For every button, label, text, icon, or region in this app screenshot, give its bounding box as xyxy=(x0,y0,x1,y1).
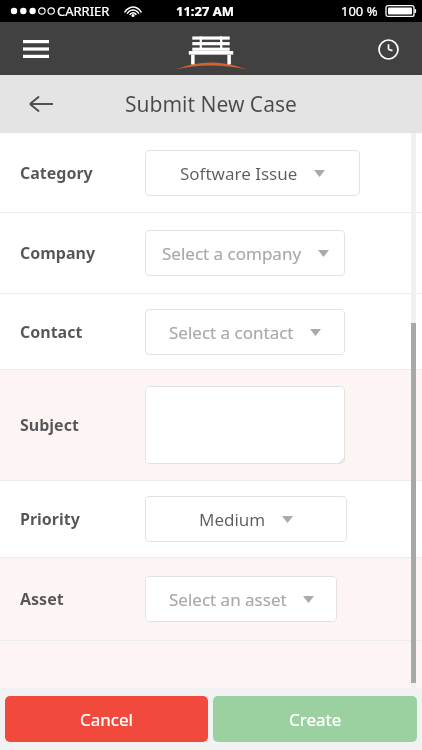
button[interactable]: History xyxy=(368,29,408,69)
staticText: CARRIER xyxy=(57,2,110,20)
button[interactable]: Select a contact xyxy=(145,309,345,355)
staticText: Submit New Case xyxy=(125,90,297,119)
staticText: Select a contact xyxy=(169,321,294,344)
staticText: 100 % xyxy=(341,2,378,20)
staticText: Create xyxy=(289,708,342,731)
staticText: Cancel xyxy=(80,708,133,731)
button[interactable]: Subject xyxy=(0,370,422,480)
staticText: Contact xyxy=(20,321,145,343)
button[interactable]: Create xyxy=(213,696,417,742)
button[interactable]: Software Issue xyxy=(145,150,360,196)
button[interactable] xyxy=(145,386,345,464)
button[interactable]: Select a company xyxy=(145,230,345,276)
staticText: Category xyxy=(20,162,145,184)
staticText: Software Issue xyxy=(180,162,298,185)
button[interactable]: Contact xyxy=(0,294,422,369)
button[interactable]: Company xyxy=(0,213,422,293)
button[interactable]: Medium xyxy=(145,496,347,542)
button[interactable]: Back xyxy=(20,83,62,125)
button[interactable]: Priority xyxy=(0,481,422,557)
staticText: Select an asset xyxy=(169,588,287,611)
staticText: Priority xyxy=(20,508,145,530)
staticText: Select a company xyxy=(162,242,302,265)
staticText: 11:27 AM xyxy=(176,2,235,20)
staticText: Medium xyxy=(199,508,266,531)
button[interactable]: Select an asset xyxy=(145,576,337,622)
staticText: Subject xyxy=(20,414,145,436)
button[interactable]: Menu xyxy=(16,29,56,69)
staticText: Company xyxy=(20,242,145,264)
button[interactable]: Category xyxy=(0,133,422,212)
staticText: Asset xyxy=(20,588,145,610)
button[interactable]: Cancel xyxy=(5,696,208,742)
button[interactable]: Asset xyxy=(0,558,422,640)
